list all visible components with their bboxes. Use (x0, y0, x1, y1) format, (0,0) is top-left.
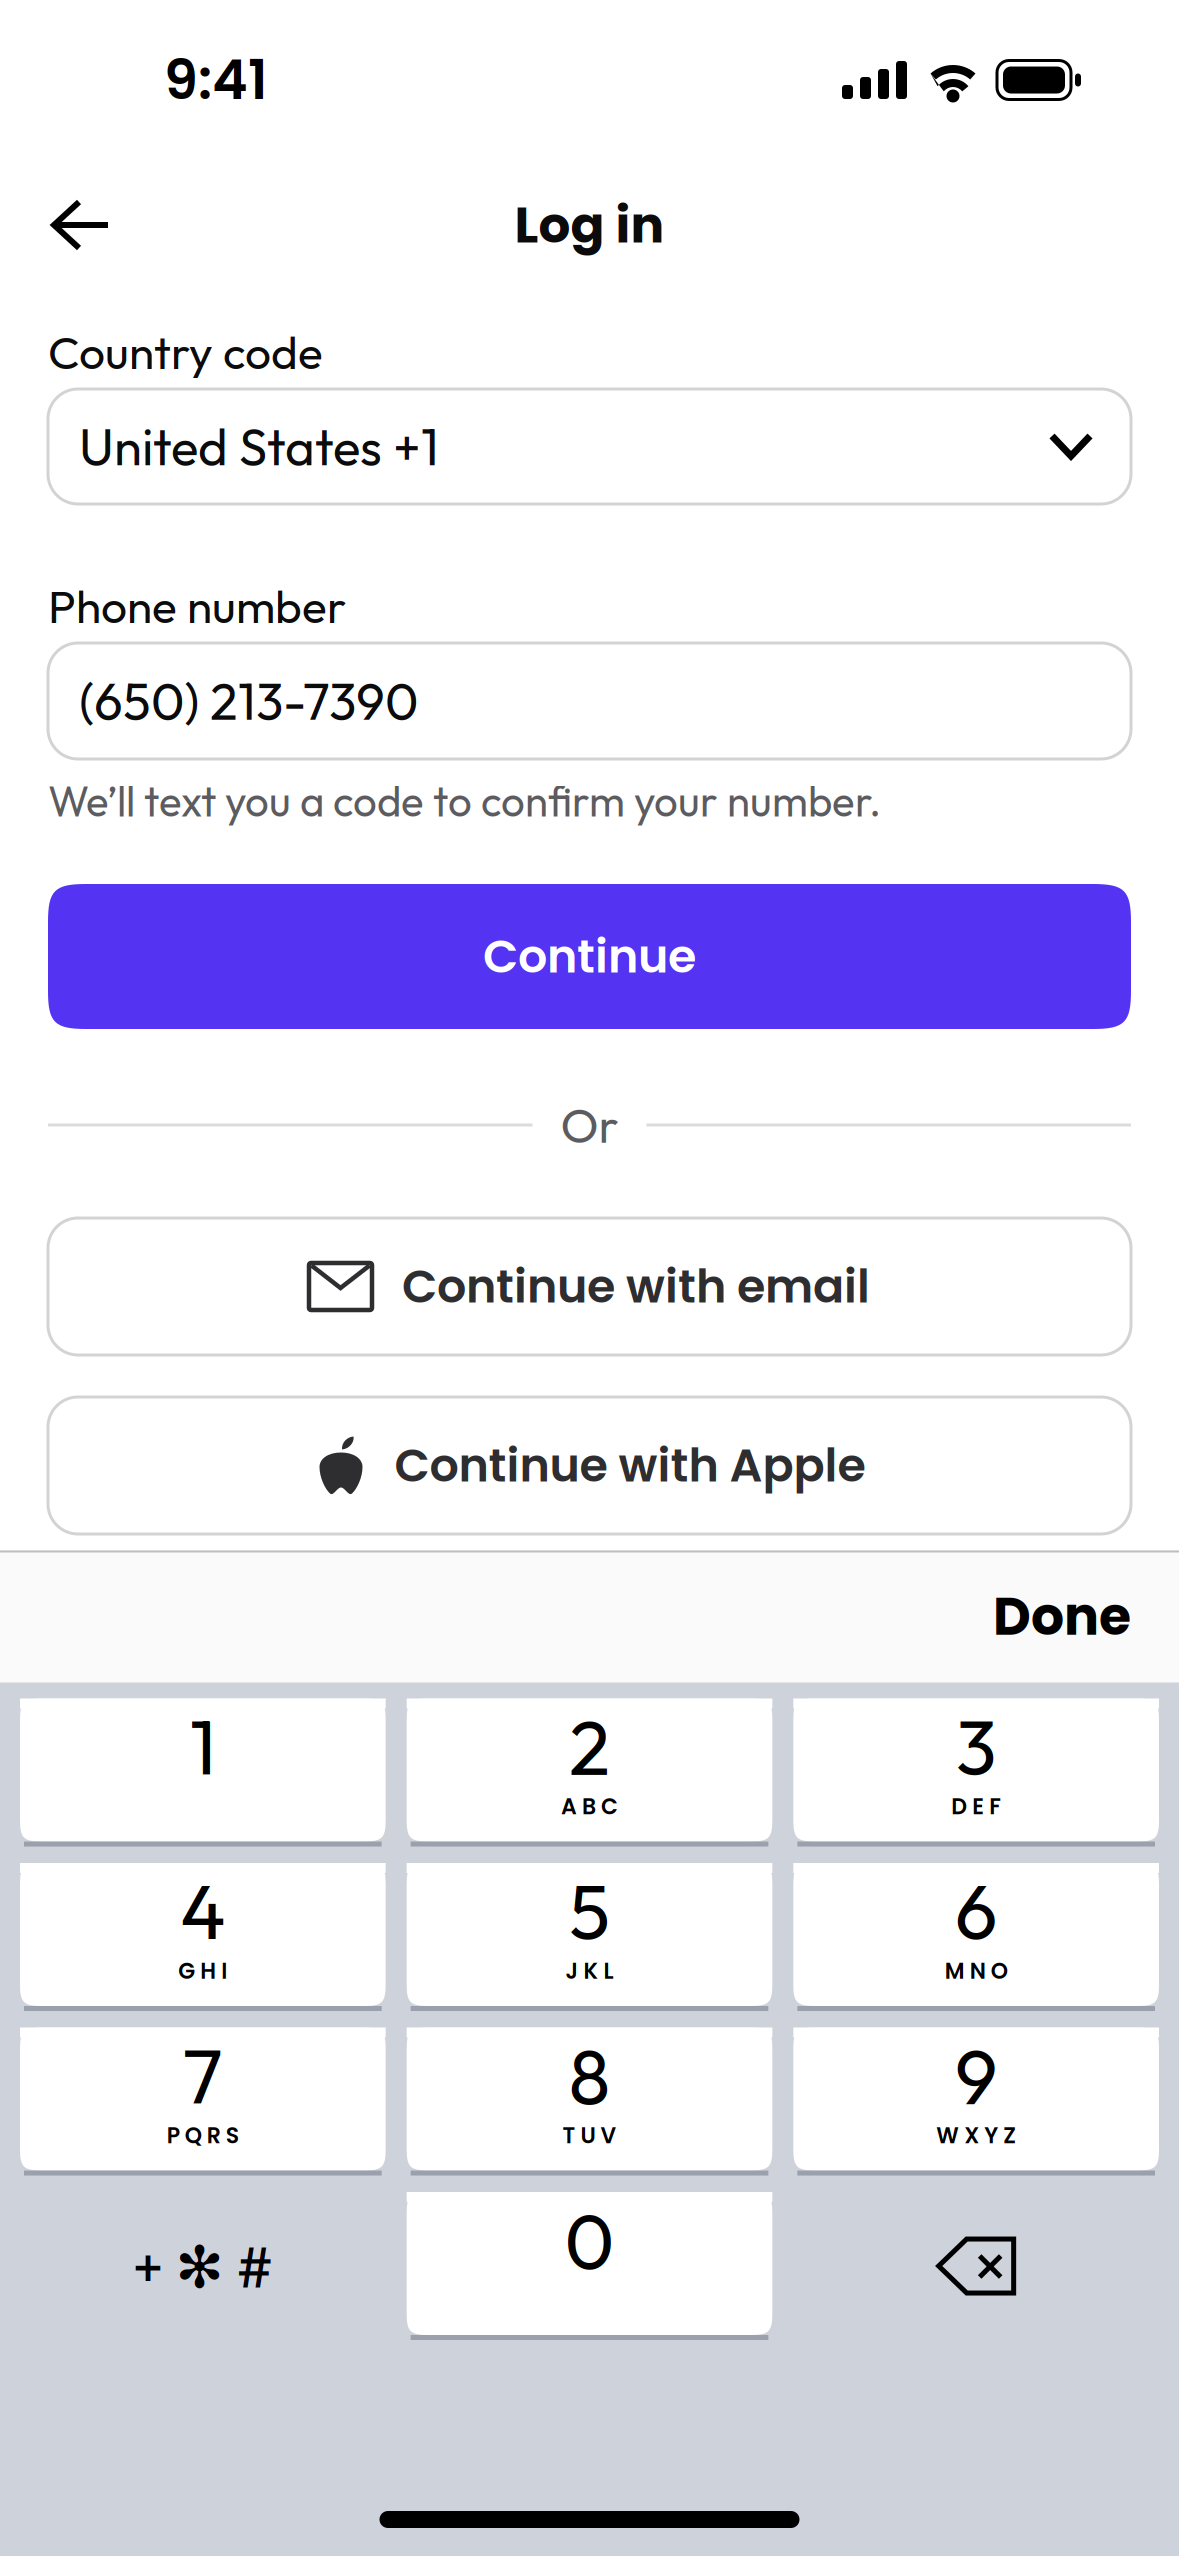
button[interactable]: 6 (793, 1863, 1159, 2011)
staticText: 9 (955, 2028, 998, 2123)
button[interactable]: 3 (793, 1698, 1159, 1846)
staticText: United States +1 (79, 414, 439, 479)
staticText: (650) 213-7390 (79, 669, 418, 733)
staticText: 9:41 (164, 42, 268, 118)
staticText: 4 (180, 1863, 225, 1959)
button[interactable]: 8 (407, 2027, 772, 2175)
button[interactable]: Continue (48, 884, 1131, 1029)
staticText: 5 (569, 1863, 610, 1959)
button[interactable]: Continue with email (48, 1218, 1131, 1355)
staticText: 6 (955, 1863, 998, 1959)
staticText: P Q R S (167, 2120, 239, 2151)
button[interactable]: 2 (407, 1698, 772, 1846)
button[interactable]: 4 (20, 1863, 386, 2011)
button[interactable]: United States +1 (48, 389, 1131, 504)
staticText: 1 (190, 1699, 216, 1794)
staticText: Continue (483, 924, 696, 989)
staticText: Country code (48, 323, 323, 381)
button[interactable]: Delete (793, 2192, 1159, 2340)
button[interactable]: Continue with Apple (48, 1397, 1131, 1534)
staticText: Log in (514, 190, 664, 260)
staticText: 7 (183, 2028, 223, 2123)
staticText: Phone number (48, 577, 346, 635)
staticText: Or (560, 1095, 618, 1155)
staticText: A B C (561, 1791, 618, 1822)
staticText: W X Y Z (936, 2120, 1016, 2151)
staticText: D E F (951, 1791, 1001, 1822)
staticText: 0 (564, 2192, 614, 2288)
staticText: M N O (945, 1956, 1008, 1986)
staticText: Continue with Apple (394, 1433, 865, 1498)
staticText: 3 (956, 1699, 997, 1794)
button[interactable]: Done (965, 1554, 1159, 1679)
staticText: Done (993, 1580, 1131, 1653)
staticText: Continue with email (402, 1254, 870, 1319)
staticText: + ✻ # (132, 2229, 273, 2303)
button[interactable]: 7 (20, 2027, 386, 2175)
button[interactable]: 1 (20, 1698, 386, 1846)
button[interactable]: 0 (407, 2192, 772, 2340)
button[interactable]: Back (23, 167, 139, 283)
staticText: G H I (178, 1956, 227, 1986)
button[interactable]: Symbols (20, 2192, 386, 2340)
staticText: 2 (569, 1699, 610, 1794)
staticText: 8 (568, 2028, 610, 2123)
button[interactable]: 5 (407, 1863, 772, 2011)
staticText: J K L (565, 1956, 613, 1986)
button[interactable]: 9 (793, 2027, 1159, 2175)
staticText: T U V (562, 2120, 616, 2151)
staticText: We’ll text you a code to confirm your nu… (48, 774, 881, 827)
